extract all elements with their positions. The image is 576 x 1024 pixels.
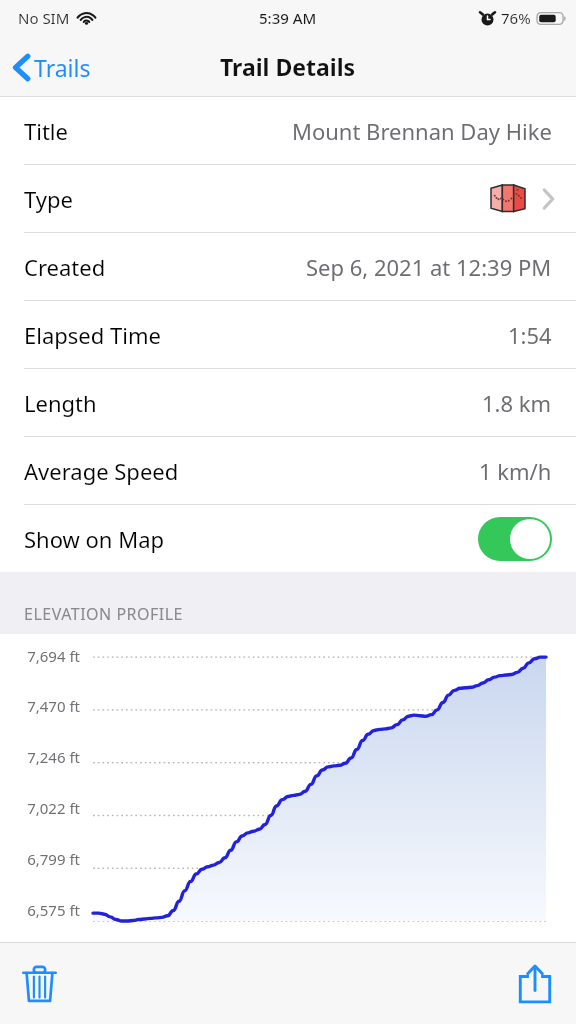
button[interactable]: Average Speed	[0, 437, 576, 504]
button[interactable]: Type	[0, 165, 576, 232]
staticText: Trails	[34, 52, 91, 83]
staticText: Length	[24, 388, 97, 418]
staticText: 1.8 km	[482, 388, 552, 418]
staticText: Show on Map	[24, 524, 165, 554]
staticText: ELEVATION PROFILE	[24, 603, 184, 625]
staticText: 6,799 ft	[0, 849, 80, 869]
button[interactable]: Delete	[6, 950, 72, 1016]
staticText: Mount Brennan Day Hike	[292, 116, 552, 146]
staticText: 76%	[501, 8, 531, 28]
staticText: Created	[24, 252, 106, 282]
button[interactable]: Show on Map, on	[478, 517, 552, 561]
staticText: 1 km/h	[479, 456, 552, 486]
staticText: Title	[24, 116, 68, 146]
button[interactable]: Length	[0, 369, 576, 436]
staticText: No SIM	[18, 8, 70, 28]
staticText: Trail Details	[220, 51, 356, 82]
button[interactable]: Title	[0, 97, 576, 164]
staticText: Sep 6, 2021 at 12:39 PM	[306, 252, 552, 282]
staticText: 7,246 ft	[0, 747, 80, 767]
staticText: Elapsed Time	[24, 320, 161, 350]
staticText: 1:54	[508, 320, 552, 350]
staticText: 7,022 ft	[0, 798, 80, 818]
staticText: Average Speed	[24, 456, 179, 486]
button[interactable]: Share	[502, 950, 568, 1016]
staticText: 6,575 ft	[0, 900, 80, 920]
staticText: Type	[24, 184, 73, 214]
staticText: 7,470 ft	[0, 696, 80, 716]
staticText: 5:39 AM	[259, 8, 317, 28]
staticText: 7,694 ft	[0, 646, 80, 666]
button[interactable]: Trails	[0, 44, 103, 90]
button[interactable]: Created	[0, 233, 576, 300]
button[interactable]: Elapsed Time	[0, 301, 576, 368]
